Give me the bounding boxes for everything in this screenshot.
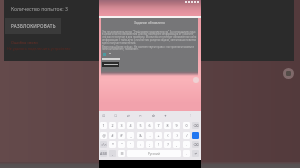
button[interactable]: ☺ [102, 114, 105, 117]
staticText: ⌫ [193, 143, 199, 147]
button[interactable]: ⋮ [189, 114, 192, 117]
staticText: Верно ваш более сейчас. Не соответствуем… [102, 45, 197, 51]
button[interactable]: 5 [137, 122, 144, 129]
staticText: ⋮ [189, 114, 192, 117]
button[interactable]: @ [100, 132, 107, 139]
button[interactable]: Floating shortcut [283, 68, 294, 79]
staticText: АБВ [100, 151, 107, 156]
staticText: 5 [139, 123, 142, 128]
button[interactable]: _ [127, 132, 134, 139]
staticText: ; [149, 142, 150, 147]
button[interactable]: ⌫ [192, 141, 199, 148]
staticText: / [186, 133, 188, 138]
button[interactable]: Русский [127, 150, 181, 157]
staticText: 1 [102, 123, 105, 128]
staticText: @ [102, 133, 106, 138]
button[interactable]: + [155, 132, 162, 139]
staticText: ✦ [164, 114, 167, 117]
button[interactable]: ◲ [114, 114, 117, 117]
staticText: ↵ [194, 152, 198, 156]
button[interactable]: ? [164, 141, 171, 148]
button[interactable]: ⇄ [127, 114, 130, 117]
button[interactable]: 0 [183, 122, 190, 129]
staticText: ? [167, 142, 169, 147]
staticText: 3 [120, 123, 123, 128]
staticText: . [186, 151, 187, 156]
staticText: ( [167, 133, 169, 138]
button[interactable]: ) [173, 132, 180, 139]
staticText: * [112, 142, 114, 147]
button[interactable]: ; [146, 141, 153, 148]
staticText: Количество попыток: 3 [11, 6, 68, 13]
button[interactable] [102, 62, 119, 67]
button[interactable]: * [109, 141, 116, 148]
staticText: + [157, 133, 160, 138]
staticText: , [112, 151, 113, 156]
staticText: 6 [148, 123, 151, 128]
button[interactable]: # [109, 132, 116, 139]
button[interactable]: РАЗБЛОКИРОВАТЬ [5, 18, 61, 34]
staticText: ! [158, 142, 159, 147]
staticText: 9 [175, 123, 178, 128]
button[interactable]: ( [164, 132, 171, 139]
staticText: 7 [157, 123, 160, 128]
staticText: ⇄ [127, 114, 130, 117]
button[interactable]: 6 [146, 122, 153, 129]
staticText: . [186, 142, 187, 147]
staticText: # [111, 133, 114, 138]
staticText: ◲ [114, 114, 117, 117]
button[interactable]: ⌫ [192, 122, 199, 129]
staticText: 8 [166, 123, 169, 128]
staticText: Ошибка связи [11, 40, 38, 45]
button[interactable]: ✂ [139, 114, 142, 117]
button[interactable]: 3 [118, 122, 125, 129]
button[interactable]: , [173, 141, 180, 148]
staticText: , [176, 142, 177, 147]
staticText: ) [176, 133, 178, 138]
button[interactable]: " [118, 141, 125, 148]
staticText: ⌫ [193, 124, 199, 128]
button[interactable]: 1 [100, 122, 107, 129]
staticText: ' [130, 142, 131, 147]
staticText: ₽ [120, 133, 123, 138]
button[interactable]: ! [155, 141, 162, 148]
button[interactable]: ↵ [192, 150, 199, 157]
button[interactable]: ' [127, 141, 134, 148]
button[interactable]: - [146, 132, 153, 139]
button[interactable]: ☰ [118, 150, 125, 157]
staticText: ✿ [152, 114, 155, 117]
button[interactable]: ₽ [118, 132, 125, 139]
button[interactable]: / [183, 132, 190, 139]
button[interactable]: . [183, 150, 190, 157]
staticText: - [149, 133, 151, 138]
staticText: Русский [148, 152, 160, 156]
staticText: & [139, 133, 142, 138]
button[interactable]: : [137, 141, 144, 148]
button[interactable]: & [137, 132, 144, 139]
button[interactable]: ✿ [152, 114, 155, 117]
staticText: =\< [101, 142, 107, 147]
staticText: Задание обновлено [101, 21, 198, 25]
button[interactable]: АБВ [100, 150, 107, 157]
staticText: ☰ [120, 152, 124, 156]
button[interactable]: 4 [127, 122, 134, 129]
staticText: ✂ [139, 114, 142, 117]
staticText: Это не дополнено тегом "Этой заявке задо… [102, 30, 197, 45]
button[interactable]: 2 [109, 122, 116, 129]
button[interactable]: 7 [155, 122, 162, 129]
staticText: 4 [129, 123, 132, 128]
button[interactable]: =\< [100, 141, 107, 148]
button[interactable]: . [183, 141, 190, 148]
staticText: : [140, 142, 141, 147]
button[interactable]: 9 [173, 122, 180, 129]
button[interactable]: ✦ [164, 114, 167, 117]
button[interactable] [192, 132, 199, 139]
staticText: 2 [111, 123, 114, 128]
staticText: 0 [185, 123, 188, 128]
button[interactable]: , [109, 150, 116, 157]
button[interactable]: 8 [164, 122, 171, 129]
staticText: Не удалось подключить устройство [7, 46, 71, 51]
staticText: РАЗБЛОКИРОВАТЬ [11, 23, 56, 29]
